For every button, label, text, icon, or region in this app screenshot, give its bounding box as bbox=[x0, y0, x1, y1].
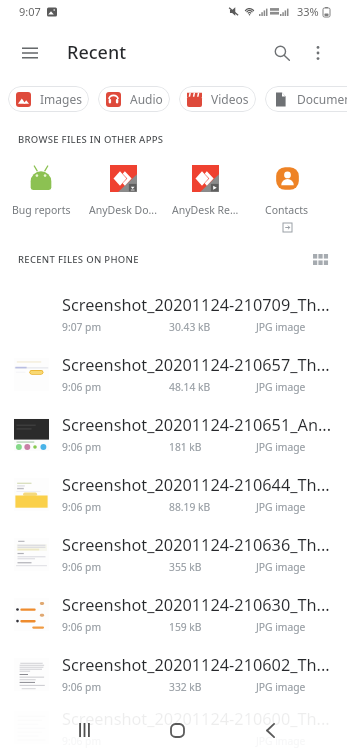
staticText: 88.19 kB bbox=[169, 500, 211, 514]
staticText: 33% bbox=[297, 4, 319, 19]
staticText: Screenshot_20201124-210709_Th... bbox=[62, 294, 330, 316]
button[interactable]: AnyDesk Re... bbox=[164, 164, 246, 217]
staticText: 9:06 pm bbox=[62, 440, 102, 454]
staticText: Screenshot_20201124-210644_Th... bbox=[62, 474, 330, 496]
staticText: 181 kB bbox=[169, 440, 202, 454]
button[interactable]: Screenshot_20201124-210600_Th... bbox=[0, 704, 347, 751]
button[interactable]: Screenshot_20201124-210630_Th... bbox=[0, 584, 347, 644]
staticText: 9:06 pm bbox=[62, 734, 102, 748]
staticText: Screenshot_20201124-210657_Th... bbox=[62, 354, 330, 376]
staticText: 9:06 pm bbox=[62, 620, 102, 634]
staticText: JPG image bbox=[256, 680, 306, 694]
staticText: RECENT FILES ON PHONE bbox=[18, 253, 139, 266]
staticText: Recent bbox=[67, 40, 127, 65]
button[interactable]: Contacts bbox=[246, 164, 328, 232]
staticText: Screenshot_20201124-210602_Th... bbox=[62, 654, 330, 676]
staticText: Videos bbox=[211, 91, 249, 107]
button[interactable]: More options bbox=[301, 36, 335, 70]
button[interactable]: Bug reports bbox=[0, 164, 82, 217]
staticText: 9:06 pm bbox=[62, 500, 102, 514]
staticText: Images bbox=[40, 91, 82, 107]
staticText: 9:06 pm bbox=[62, 680, 102, 694]
button[interactable]: Navigation menu bbox=[10, 33, 50, 73]
staticText: Screenshot_20201124-210600_Th... bbox=[62, 708, 330, 730]
staticText: Screenshot_20201124-210651_An... bbox=[62, 414, 332, 436]
staticText: JPG image bbox=[256, 440, 306, 454]
button[interactable]: Screenshot_20201124-210651_An... bbox=[0, 404, 347, 464]
button[interactable]: AnyDesk Do... bbox=[82, 164, 164, 217]
button[interactable]: Back bbox=[250, 710, 290, 750]
button[interactable]: Screenshot_20201124-210644_Th... bbox=[0, 464, 347, 524]
button[interactable]: Home bbox=[157, 710, 197, 750]
staticText: 9:07 bbox=[19, 4, 41, 19]
staticText: 9:07 pm bbox=[62, 320, 102, 334]
staticText: Audio bbox=[130, 91, 163, 107]
button[interactable]: Videos bbox=[179, 86, 256, 112]
staticText: JPG image bbox=[256, 380, 306, 394]
staticText: 159 kB bbox=[169, 620, 202, 634]
staticText: JPG image bbox=[256, 560, 306, 574]
staticText: JPG image bbox=[256, 500, 306, 514]
button[interactable]: Screenshot_20201124-210636_Th... bbox=[0, 524, 347, 584]
button[interactable]: Documents bbox=[265, 86, 347, 112]
button[interactable]: Images bbox=[8, 86, 89, 112]
staticText: Screenshot_20201124-210636_Th... bbox=[62, 534, 330, 556]
staticText: Bug reports bbox=[12, 203, 71, 217]
staticText: JPG image bbox=[256, 620, 306, 634]
button[interactable]: Switch to grid view bbox=[307, 246, 333, 272]
staticText: Screenshot_20201124-210630_Th... bbox=[62, 594, 330, 616]
staticText: 355 kB bbox=[169, 560, 202, 574]
staticText: 48.14 kB bbox=[169, 380, 211, 394]
staticText: JPG image bbox=[256, 734, 306, 748]
staticText: 332 kB bbox=[169, 680, 202, 694]
button[interactable]: Audio bbox=[98, 86, 170, 112]
staticText: Documents bbox=[297, 91, 347, 107]
staticText: BROWSE FILES IN OTHER APPS bbox=[18, 133, 164, 146]
staticText: AnyDesk Re... bbox=[172, 203, 239, 217]
button[interactable]: Screenshot_20201124-210602_Th... bbox=[0, 644, 347, 704]
staticText: AnyDesk Do... bbox=[89, 203, 157, 217]
staticText: 30.43 kB bbox=[169, 320, 211, 334]
staticText: 9:06 pm bbox=[62, 380, 102, 394]
button[interactable]: Recent apps bbox=[64, 710, 104, 750]
staticText: Contacts bbox=[265, 203, 309, 217]
staticText: JPG image bbox=[256, 320, 306, 334]
button[interactable]: Search bbox=[263, 34, 301, 72]
button[interactable]: Screenshot_20201124-210657_Th... bbox=[0, 344, 347, 404]
button[interactable]: Screenshot_20201124-210709_Th... bbox=[0, 284, 347, 344]
staticText: 9:06 pm bbox=[62, 560, 102, 574]
